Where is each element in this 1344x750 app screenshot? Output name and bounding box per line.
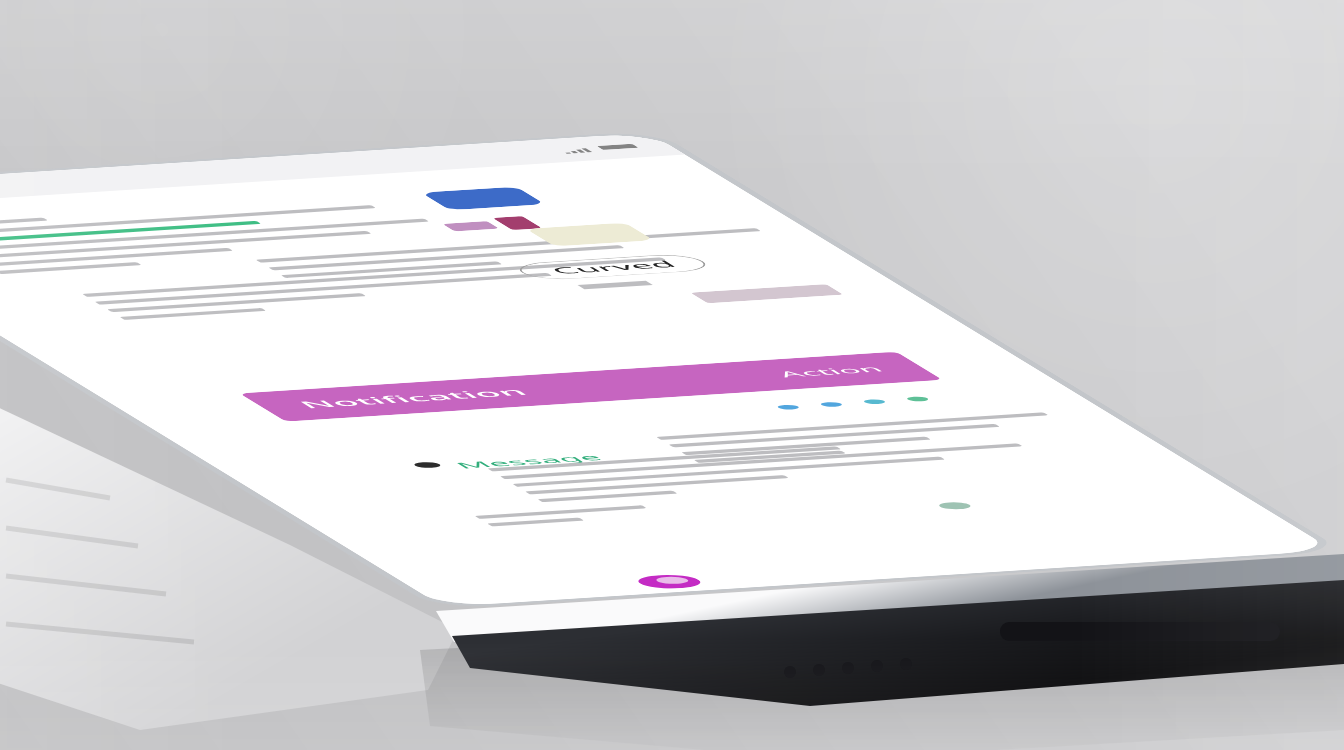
button[interactable] xyxy=(526,223,654,246)
staticText: Curved xyxy=(544,258,682,276)
button[interactable]: Compose xyxy=(630,573,709,590)
button[interactable] xyxy=(492,216,542,230)
staticText: Notification xyxy=(292,385,534,411)
button[interactable] xyxy=(442,221,500,231)
button[interactable] xyxy=(421,187,545,210)
staticText: Action xyxy=(771,363,889,380)
button[interactable]: Curved xyxy=(508,253,717,281)
staticText: Message title xyxy=(450,448,665,470)
button[interactable]: Notification xyxy=(239,352,943,422)
